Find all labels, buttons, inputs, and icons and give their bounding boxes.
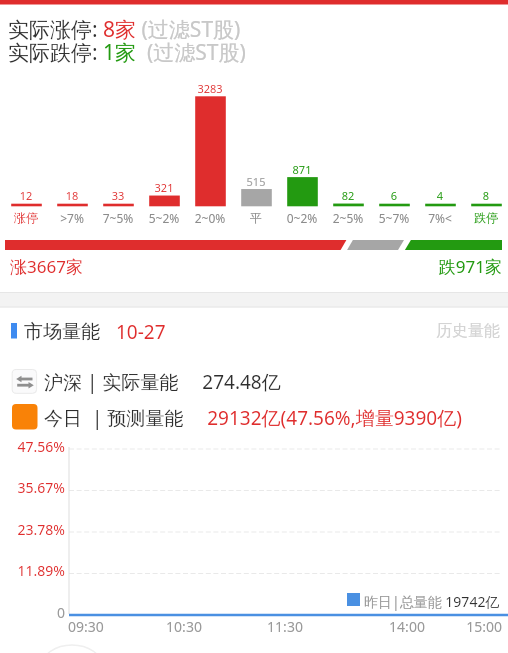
staticText: 871 [279,162,325,177]
staticText: 0~2% [279,210,325,226]
staticText: 7%< [417,210,463,226]
staticText: 47.56% [0,437,65,456]
button[interactable]: 沪深 | 实际量能 274.48亿 [44,369,281,395]
staticText: 5~7% [371,210,417,226]
staticText: 跌停 [463,210,508,225]
staticText: 82 [325,188,371,203]
staticText: 515 [233,174,279,189]
staticText: 12 [3,188,49,203]
staticText: 35.67% [0,478,65,497]
staticText: 11.89% [0,561,65,580]
staticText: 10-27 [116,319,166,345]
staticText: 09:30 [68,617,104,636]
staticText: 14:00 [385,617,429,636]
staticText: 5~2% [141,210,187,226]
staticText: 3283 [187,81,233,96]
staticText: 7~5% [95,210,141,226]
staticText: 4 [417,188,463,203]
staticText: 18 [49,188,95,203]
staticText: 涨停 [3,210,49,225]
staticText: 平 [233,210,279,225]
button[interactable]: 实际跌停: 1家 (过滤ST股) [8,38,246,67]
staticText: 23.78% [0,520,65,539]
button[interactable]: 今日 | 预测量能 29132亿(47.56%,增量9390亿) [44,405,462,431]
staticText: 2~5% [325,210,371,226]
staticText: 321 [141,180,187,195]
button[interactable]: 市场量能 [24,320,100,344]
staticText: 11:30 [263,617,307,636]
staticText: 2~0% [187,210,233,226]
staticText: 昨日|总量能 19742亿 [364,592,500,611]
staticText: 8 [463,188,508,203]
staticText: 跌971家 [402,255,502,278]
staticText: 10:30 [162,617,206,636]
staticText: 涨3667家 [10,255,83,278]
staticText: 15:00 [442,617,502,636]
staticText: 33 [95,188,141,203]
staticText: 0 [0,603,65,622]
staticText: 6 [371,188,417,203]
staticText: >7% [49,210,95,226]
button[interactable]: 历史量能 [400,321,500,341]
button[interactable]: 实际涨停: 8家 (过滤ST股) [8,15,241,44]
